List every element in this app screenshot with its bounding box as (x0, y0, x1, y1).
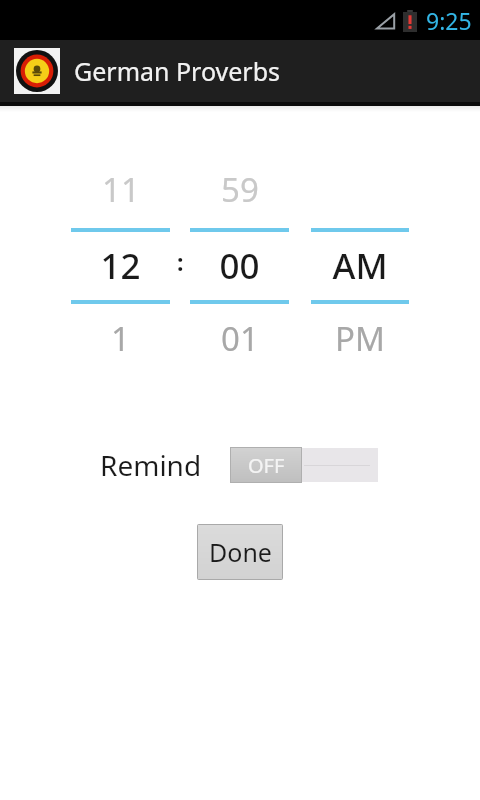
staticText: : (177, 246, 184, 277)
staticText: PM (335, 316, 385, 361)
button[interactable]: AM (311, 150, 409, 372)
button[interactable]: Done (197, 524, 283, 580)
staticText: 59 (221, 167, 259, 212)
other: App icon (14, 48, 60, 94)
staticText: OFF (248, 452, 285, 479)
button[interactable]: Remind toggle, off (230, 447, 378, 483)
staticText: Done (209, 535, 272, 569)
button[interactable]: App icon (0, 40, 480, 102)
button[interactable]: 11 (71, 150, 170, 372)
staticText: Remind (100, 446, 202, 484)
staticText: AM (332, 242, 388, 290)
staticText: 9:25 (426, 5, 472, 36)
staticText: 01 (221, 316, 259, 361)
staticText: German Proverbs (74, 54, 281, 88)
staticText: 12 (100, 242, 141, 290)
button[interactable]: 59 (190, 150, 289, 372)
staticText: 00 (219, 242, 260, 290)
staticText: 11 (102, 167, 140, 212)
staticText: 1 (111, 316, 130, 361)
